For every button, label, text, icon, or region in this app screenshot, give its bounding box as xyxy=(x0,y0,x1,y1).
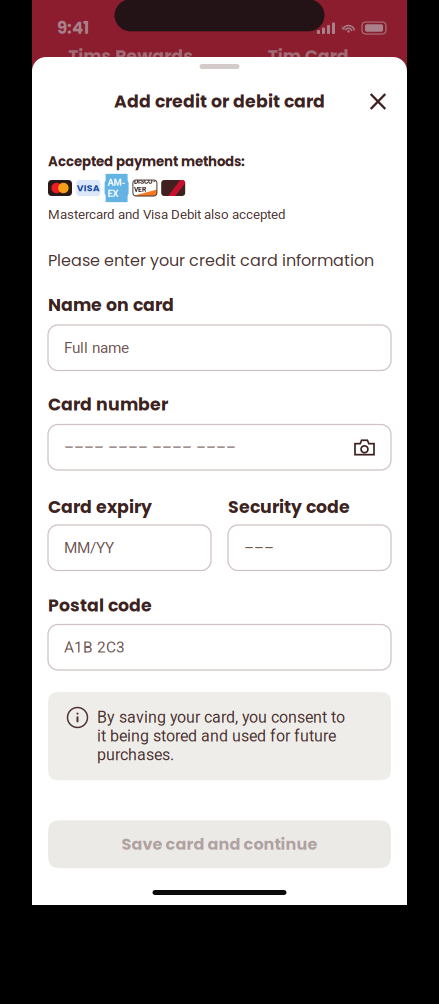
staticText: Postal code xyxy=(48,593,152,618)
staticText: VISA xyxy=(77,181,100,195)
staticText: By saving your card, you consent to it b… xyxy=(97,708,345,764)
staticText: Security code xyxy=(228,495,350,519)
staticText: Save card and continue xyxy=(121,833,317,855)
staticText: A1B 2C3 xyxy=(64,638,125,656)
staticText: Full name xyxy=(64,339,129,357)
button[interactable]: Full name xyxy=(48,325,391,370)
button[interactable]: MM/YY xyxy=(48,525,211,570)
staticText: Please enter your credit card informatio… xyxy=(48,249,374,272)
staticText: Name on card xyxy=(48,293,174,317)
staticText: Tims Rewards xyxy=(68,44,193,68)
staticText: Add credit or debit card xyxy=(114,89,325,114)
staticText: AMEX xyxy=(108,177,126,199)
staticText: DISCOVER xyxy=(134,178,156,193)
staticText: Tim Card xyxy=(268,44,349,68)
button[interactable]: ––– xyxy=(228,525,391,570)
staticText: 9:41 xyxy=(57,16,89,40)
button[interactable]: Close xyxy=(358,81,398,121)
staticText: Accepted payment methods: xyxy=(48,152,245,171)
staticText: –––– –––– –––– –––– xyxy=(64,438,236,456)
staticText: Mastercard and Visa Debit also accepted xyxy=(48,207,286,222)
staticText: Card expiry xyxy=(48,495,152,519)
button[interactable]: Save card and continue xyxy=(48,820,391,868)
button[interactable]: A1B 2C3 xyxy=(48,624,391,670)
button[interactable]: –––– –––– –––– –––– xyxy=(48,424,391,470)
staticText: ––– xyxy=(244,539,274,557)
staticText: Card number xyxy=(48,392,168,417)
staticText: MM/YY xyxy=(64,539,114,557)
